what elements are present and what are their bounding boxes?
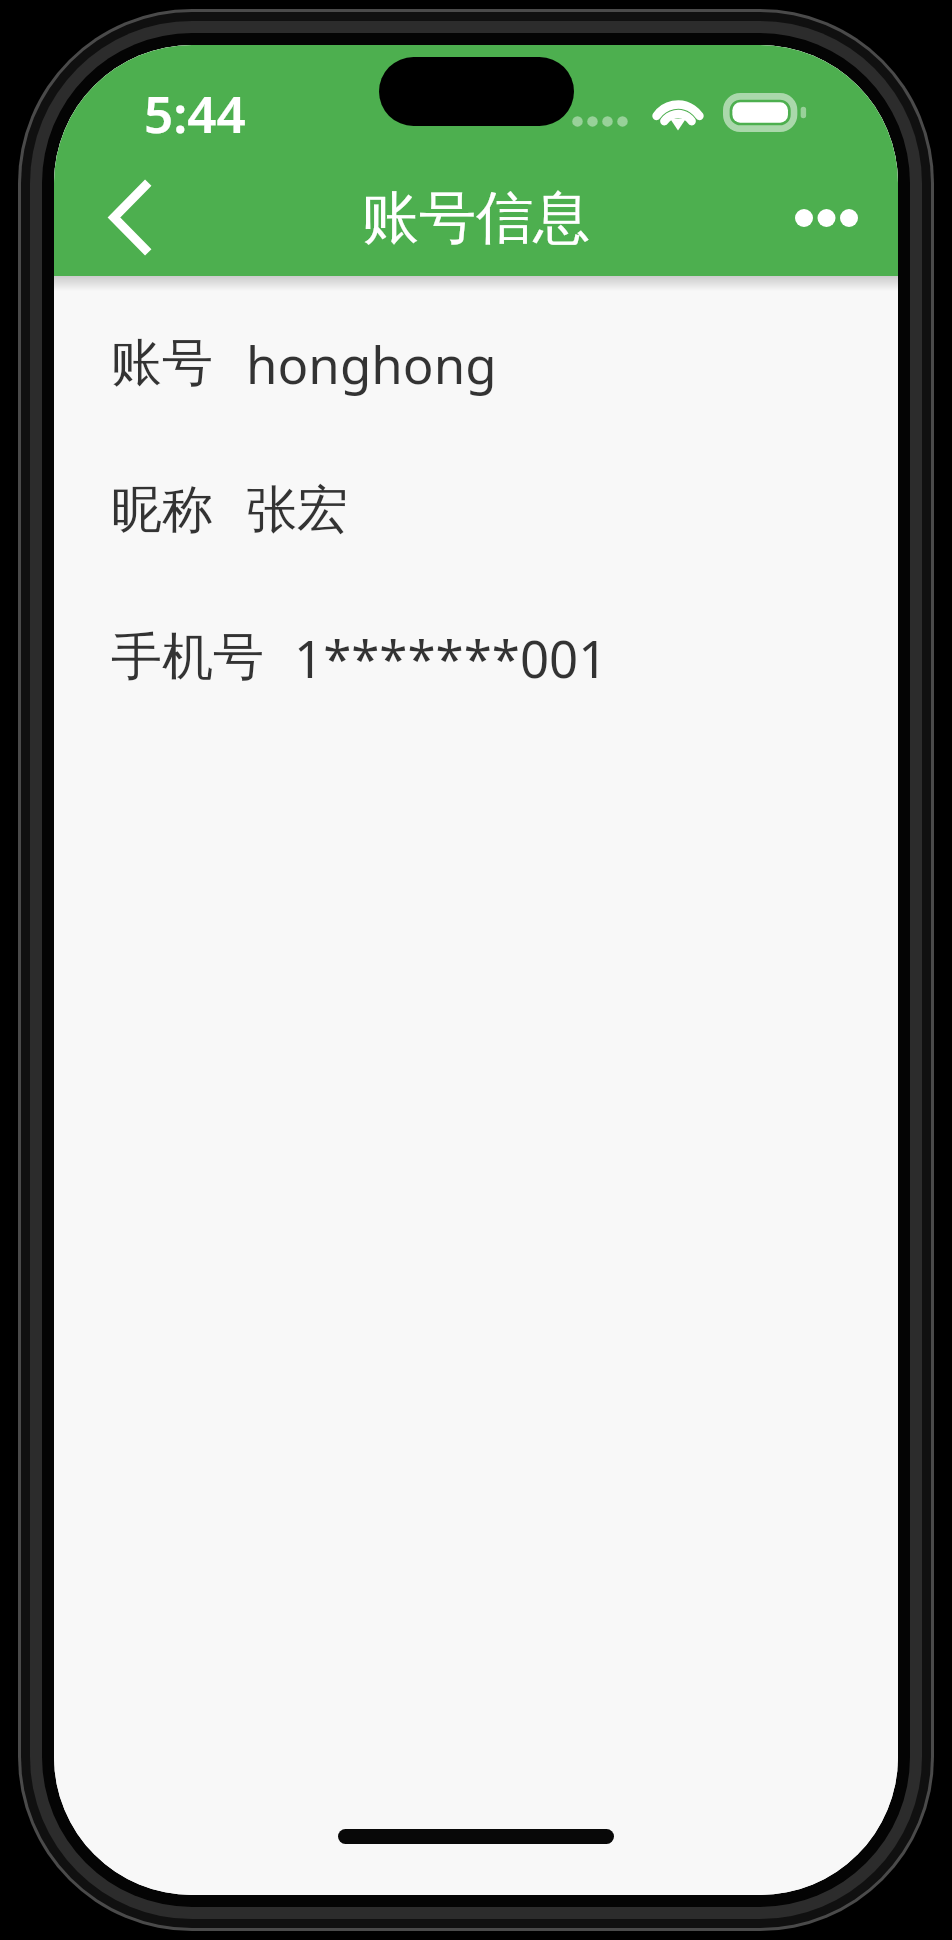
staticText: 昵称 <box>111 478 213 542</box>
staticText: 手机号 <box>111 625 264 689</box>
button[interactable]: 账号 <box>54 318 898 408</box>
staticText: 1*******001 <box>294 623 608 692</box>
button[interactable]: 昵称 <box>54 465 898 555</box>
staticText: 账号信息 <box>362 182 590 254</box>
staticText: 5:44 <box>144 78 246 147</box>
button[interactable]: Back <box>54 159 204 276</box>
staticText: 张宏 <box>246 478 348 542</box>
staticText: 账号 <box>111 331 213 395</box>
button[interactable]: 手机号 <box>54 612 898 702</box>
button[interactable]: More options <box>754 159 898 276</box>
staticText: honghong <box>246 329 497 398</box>
